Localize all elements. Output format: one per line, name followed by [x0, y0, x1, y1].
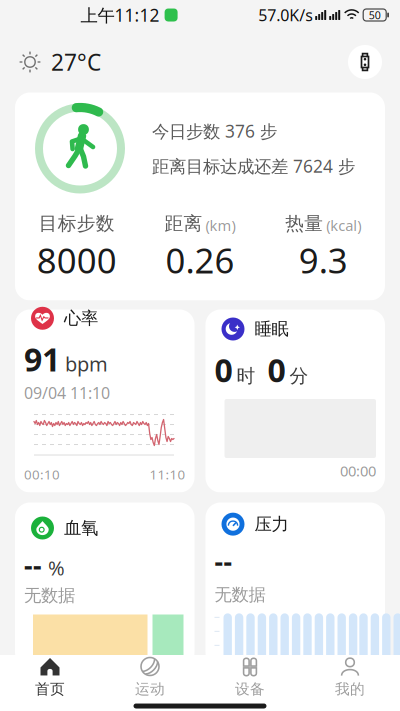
- staticText: %: [48, 554, 65, 581]
- staticText: 0: [214, 348, 232, 391]
- button[interactable]: 首页: [0, 655, 100, 699]
- staticText: 11:10: [149, 465, 185, 483]
- staticText: (kcal): [326, 215, 361, 235]
- staticText: 距离目标达成还差 7624 步: [152, 154, 355, 177]
- staticText: 无数据: [214, 584, 265, 605]
- staticText: 压力: [254, 513, 288, 535]
- staticText: 9.3: [299, 237, 348, 283]
- staticText: --: [214, 544, 232, 579]
- staticText: 我的: [335, 680, 365, 698]
- staticText: 上午11:12: [81, 3, 160, 26]
- staticText: 首页: [35, 680, 65, 698]
- staticText: 运动: [135, 680, 165, 698]
- staticText: 热量: [285, 212, 323, 235]
- button[interactable]: 压力: [205, 502, 385, 667]
- staticText: 无数据: [24, 585, 75, 606]
- staticText: 分: [289, 364, 308, 387]
- staticText: 09/04 11:10: [24, 382, 110, 403]
- button[interactable]: 心率: [15, 309, 194, 492]
- staticText: 00:10: [24, 465, 60, 483]
- staticText: 00:00: [340, 461, 376, 480]
- staticText: 0: [267, 348, 285, 391]
- staticText: 57.0K/s: [258, 4, 313, 26]
- staticText: 8000: [37, 237, 117, 283]
- button[interactable]: 血氧: [15, 502, 194, 667]
- button[interactable]: 我的: [300, 655, 400, 699]
- staticText: bpm: [65, 350, 108, 377]
- staticText: --: [24, 547, 42, 583]
- staticText: 血氧: [64, 517, 98, 539]
- button[interactable]: 运动: [100, 655, 200, 699]
- staticText: (km): [205, 215, 235, 235]
- button[interactable]: 设备: [200, 655, 300, 699]
- staticText: 27°C: [51, 47, 101, 77]
- staticText: 心率: [64, 308, 98, 329]
- button[interactable]: 我的设备: [348, 45, 382, 79]
- staticText: 距离: [164, 212, 202, 235]
- button[interactable]: 今日步数 376 步: [15, 92, 385, 300]
- staticText: 0.26: [165, 237, 234, 283]
- staticText: 睡眠: [254, 318, 288, 340]
- staticText: 时: [236, 364, 255, 387]
- staticText: 设备: [235, 680, 265, 698]
- staticText: 今日步数 376 步: [152, 119, 277, 142]
- staticText: 目标步数: [39, 212, 115, 235]
- staticText: 50: [369, 8, 381, 22]
- button[interactable]: 睡眠: [205, 309, 385, 492]
- staticText: 91: [24, 338, 60, 380]
